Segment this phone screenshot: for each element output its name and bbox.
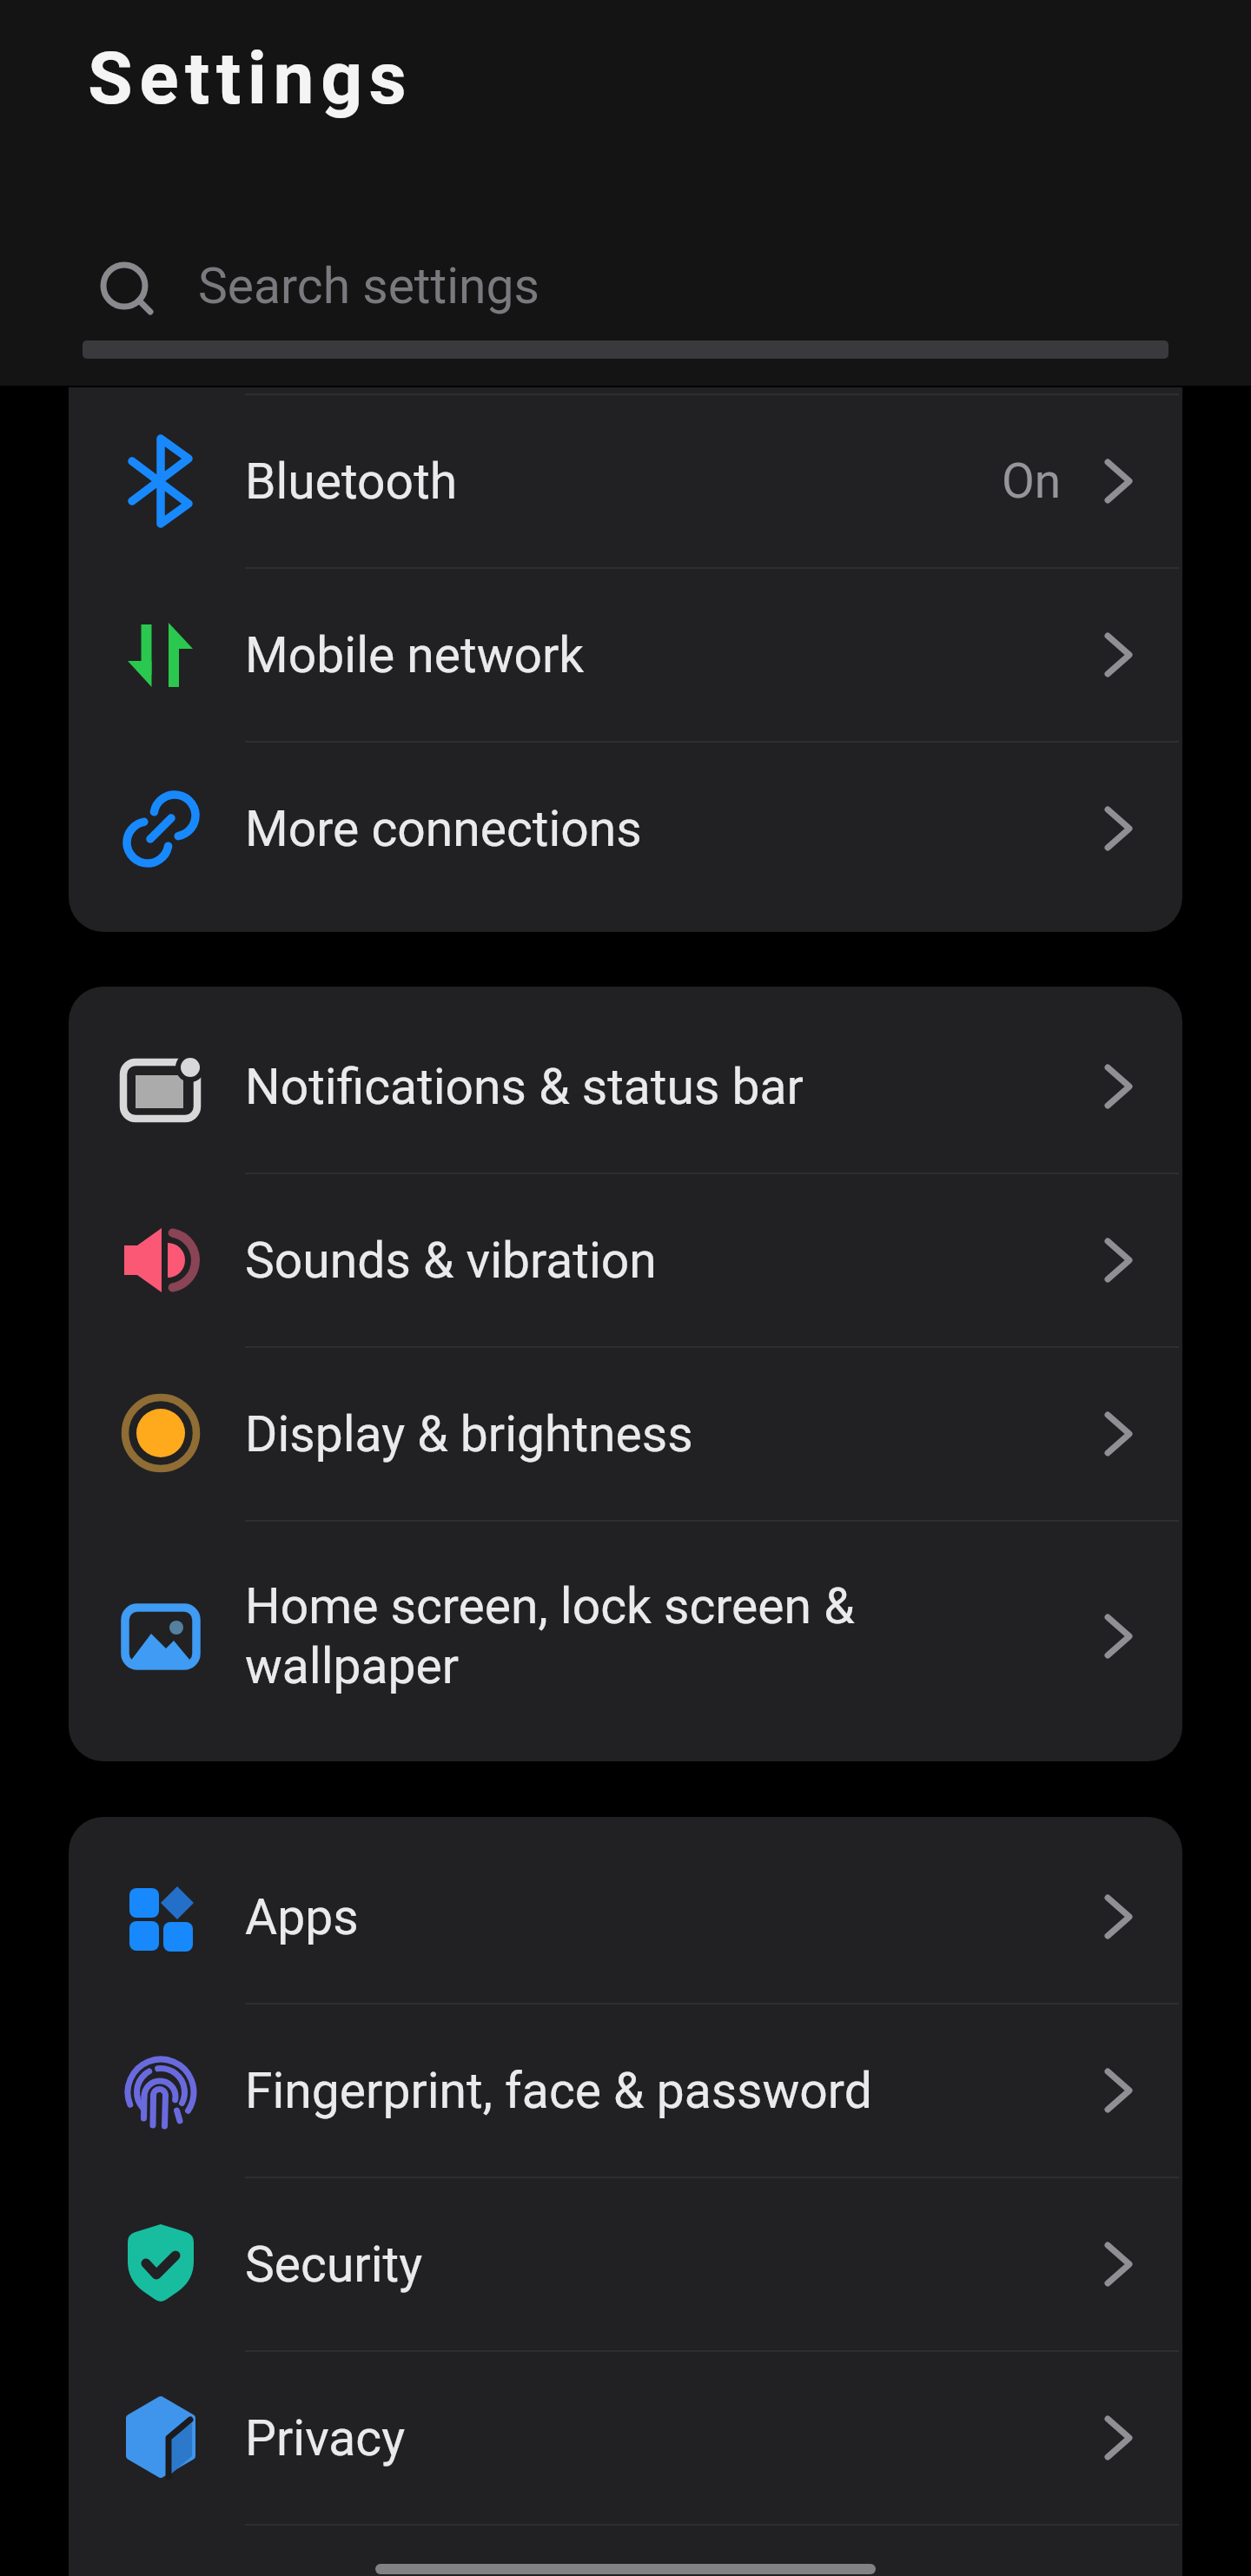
button[interactable]: Notifications & status bar [69,1001,1182,1172]
button[interactable]: Privacy [69,2352,1182,2524]
staticText: On [1002,453,1062,509]
button[interactable]: Security [69,2178,1182,2350]
staticText: Notifications & status bar [245,1058,804,1116]
staticText: Apps [245,1888,359,1946]
staticText: Mobile network [245,626,585,684]
button[interactable]: Bluetooth [69,395,1182,567]
button[interactable]: Home screen, lock screen & wallpaper [69,1522,1182,1751]
button[interactable]: Search settings [83,234,1168,359]
staticText: Fingerprint, face & password [245,2062,872,2120]
staticText: Privacy [245,2409,406,2467]
button[interactable]: Mobile network [69,569,1182,741]
staticText: Bluetooth [245,452,458,511]
button[interactable]: Fingerprint, face & password [69,2005,1182,2176]
staticText: Home screen, lock screen & wallpaper [245,1577,855,1695]
button[interactable]: Sounds & vibration [69,1174,1182,1346]
staticText: More connections [245,800,642,858]
staticText: Security [245,2236,423,2294]
button[interactable]: Display & brightness [69,1348,1182,1520]
staticText: Display & brightness [245,1405,693,1463]
staticText: Settings [88,36,414,121]
staticText: Search settings [198,257,539,315]
button[interactable]: Apps [69,1831,1182,2003]
button[interactable]: More connections [69,743,1182,915]
staticText: Sounds & vibration [245,1232,657,1290]
